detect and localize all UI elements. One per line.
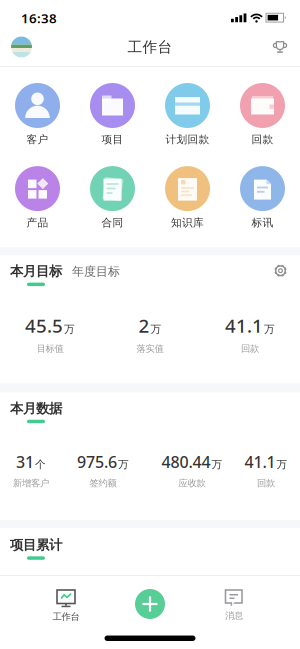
button[interactable]: 知识库 bbox=[150, 166, 225, 229]
staticText: 本月目标 bbox=[10, 263, 62, 280]
staticText: 项目 bbox=[101, 133, 123, 146]
staticText: 本月数据 bbox=[10, 400, 62, 417]
staticText: 16:38 bbox=[21, 9, 57, 27]
staticText: 项目累计 bbox=[10, 537, 62, 553]
staticText: 标讯 bbox=[251, 216, 273, 229]
button[interactable]: 工作台 bbox=[0, 589, 132, 622]
staticText: 万 bbox=[264, 323, 275, 336]
staticText: 工作台 bbox=[127, 38, 172, 56]
staticText: 年度目标 bbox=[72, 264, 120, 279]
button[interactable]: 年度目标 bbox=[72, 263, 120, 279]
staticText: 万 bbox=[118, 458, 129, 471]
staticText: 产品 bbox=[26, 216, 48, 229]
staticText: 万 bbox=[276, 458, 287, 471]
staticText: 回款 bbox=[241, 343, 259, 354]
staticText: 万 bbox=[150, 323, 161, 336]
staticText: 480.44 bbox=[161, 451, 210, 472]
staticText: 万 bbox=[211, 458, 222, 471]
button[interactable]: 项目 bbox=[75, 83, 150, 146]
button[interactable]: 计划回款 bbox=[150, 83, 225, 146]
button[interactable] bbox=[273, 41, 287, 53]
staticText: 31 bbox=[16, 451, 34, 472]
staticText: 签约额 bbox=[89, 477, 116, 489]
staticText: 新增客户 bbox=[13, 477, 49, 489]
staticText: 应收款 bbox=[178, 477, 205, 489]
staticText: 工作台 bbox=[52, 611, 79, 622]
button[interactable]: 本月目标 bbox=[10, 263, 62, 286]
staticText: 落实值 bbox=[136, 343, 163, 354]
button[interactable]: 客户 bbox=[0, 83, 75, 146]
staticText: 合同 bbox=[101, 216, 123, 229]
staticText: 目标值 bbox=[36, 343, 63, 354]
button[interactable]: 回款 bbox=[225, 83, 300, 146]
staticText: 45.5 bbox=[25, 313, 63, 338]
staticText: 回款 bbox=[257, 477, 275, 489]
staticText: 回款 bbox=[251, 133, 273, 146]
button[interactable] bbox=[274, 264, 287, 277]
button[interactable]: 产品 bbox=[0, 166, 75, 229]
staticText: 客户 bbox=[26, 133, 48, 146]
staticText: 计划回款 bbox=[165, 133, 209, 146]
staticText: 975.6 bbox=[77, 451, 117, 472]
button[interactable]: 消息 bbox=[168, 589, 300, 621]
staticText: 41.1 bbox=[225, 313, 263, 338]
staticText: 2 bbox=[138, 313, 149, 338]
button[interactable] bbox=[135, 589, 165, 619]
staticText: 消息 bbox=[225, 610, 243, 621]
button[interactable]: 标讯 bbox=[225, 166, 300, 229]
button[interactable]: 合同 bbox=[75, 166, 150, 229]
button[interactable] bbox=[11, 36, 32, 57]
staticText: 个 bbox=[35, 458, 46, 471]
staticText: 万 bbox=[64, 323, 75, 336]
staticText: 知识库 bbox=[171, 216, 204, 229]
staticText: 41.1 bbox=[244, 451, 275, 472]
